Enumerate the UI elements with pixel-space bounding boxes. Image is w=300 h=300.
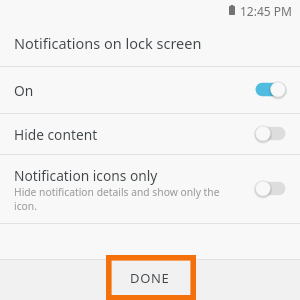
- staticText: Hide content: [14, 125, 98, 144]
- button[interactable]: Hide content: [0, 114, 300, 154]
- button[interactable]: DONE: [105, 259, 195, 300]
- button[interactable]: Switch off: [255, 179, 286, 199]
- staticText: Notification icons only: [14, 166, 158, 185]
- button[interactable]: On: [0, 67, 300, 113]
- button[interactable]: Switch on: [255, 80, 286, 100]
- staticText: DONE: [130, 269, 170, 287]
- staticText: Hide notification details and show only …: [14, 185, 226, 213]
- button[interactable]: Notification icons only: [0, 155, 300, 223]
- button[interactable]: Switch off: [255, 124, 286, 144]
- staticText: On: [14, 81, 34, 100]
- staticText: 12:45 PM: [240, 3, 292, 19]
- staticText: Notifications on lock screen: [14, 33, 202, 53]
